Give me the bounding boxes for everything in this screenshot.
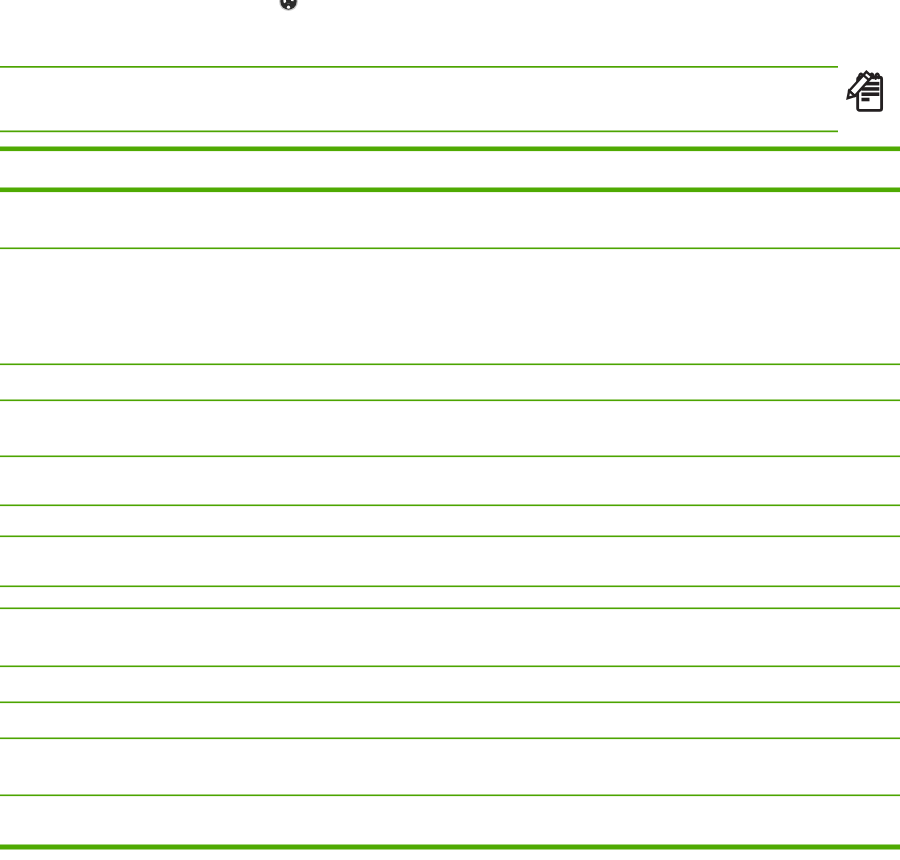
button[interactable]: Help [279, 0, 298, 11]
other: Note [855, 68, 893, 114]
